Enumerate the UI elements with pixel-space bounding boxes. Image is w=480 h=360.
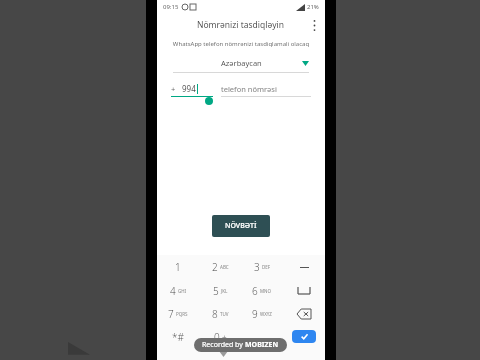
staticText: 5	[213, 284, 219, 298]
other: Enter	[292, 330, 316, 343]
button[interactable]: +	[171, 83, 213, 97]
button[interactable]: Azərbaycan	[173, 56, 309, 73]
staticText: JKL	[221, 288, 228, 294]
staticText: *#	[172, 330, 184, 344]
staticText: +	[222, 332, 227, 343]
staticText: MOBIZEN	[245, 340, 279, 350]
staticText: Azərbaycan	[221, 58, 262, 68]
staticText: MNO	[260, 288, 272, 294]
staticText: 21%	[307, 3, 319, 11]
staticText: 994	[182, 83, 196, 94]
staticText: WhatsApp telefon nömrənizi tasdiqlamali …	[165, 40, 317, 48]
staticText: 6	[252, 284, 258, 298]
staticText: 1	[175, 260, 181, 274]
staticText: 8	[212, 307, 218, 321]
button[interactable]: 1	[157, 255, 199, 279]
staticText: DEF	[262, 264, 271, 270]
button[interactable]: 5	[199, 279, 241, 302]
staticText: 09:15	[163, 3, 179, 11]
staticText: 4	[170, 284, 176, 298]
button[interactable]: telefon nömrəsi	[221, 84, 311, 97]
staticText: 3	[254, 260, 260, 274]
button[interactable]: Space	[283, 279, 325, 302]
staticText: NÖVBƏTİ	[225, 221, 257, 231]
button[interactable]: Dash	[283, 255, 325, 279]
staticText: WXYZ	[260, 311, 272, 317]
staticText: 9	[252, 307, 258, 321]
staticText: telefon nömrəsi	[221, 84, 277, 94]
other: Backspace	[297, 309, 311, 319]
staticText: Recorded by	[202, 340, 245, 350]
staticText: GHI	[178, 288, 187, 294]
staticText: 2	[212, 260, 218, 274]
button[interactable]: *#	[157, 325, 199, 348]
button[interactable]: 9	[241, 302, 283, 325]
button[interactable]: 4	[157, 279, 199, 302]
button[interactable]: 6	[241, 279, 283, 302]
button[interactable]: 3	[241, 255, 283, 279]
staticText: .	[261, 330, 264, 344]
staticText: +	[171, 84, 176, 94]
staticText: 0	[214, 330, 220, 344]
button[interactable]: NÖVBƏTİ	[212, 215, 270, 237]
button[interactable]: More options	[307, 18, 321, 32]
staticText: TUV	[220, 311, 229, 317]
other: Hide keyboard	[219, 351, 228, 357]
button[interactable]: 0	[199, 325, 241, 348]
staticText: 7	[168, 307, 174, 321]
other: Space	[298, 287, 310, 294]
staticText: ABC	[220, 264, 229, 270]
button[interactable]: Enter	[283, 325, 325, 348]
button[interactable]: Backspace	[283, 302, 325, 325]
staticText: PQRS	[176, 311, 188, 317]
button[interactable]: 2	[199, 255, 241, 279]
button[interactable]: 8	[199, 302, 241, 325]
button[interactable]: .	[241, 325, 283, 348]
staticText: Nömrənizi tasdiqləyin	[197, 19, 285, 31]
button[interactable]: 7	[157, 302, 199, 325]
